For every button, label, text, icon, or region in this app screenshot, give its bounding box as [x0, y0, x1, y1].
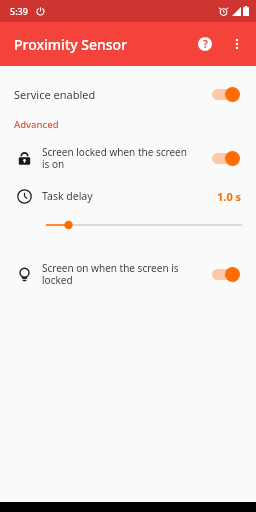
button[interactable]: Toggle	[210, 262, 244, 286]
staticText: 1.0 s	[217, 189, 242, 204]
button[interactable]: Task delay slider	[0, 212, 256, 238]
button[interactable]: More options	[222, 29, 252, 59]
button[interactable]: Help	[190, 29, 220, 59]
button[interactable]: Service enabled	[0, 76, 256, 112]
staticText: Screen on when the screen is locked	[42, 261, 179, 287]
staticText: Advanced	[14, 118, 59, 131]
staticText: ?	[203, 37, 208, 51]
staticText: 5:39	[10, 5, 28, 17]
staticText: Task delay	[42, 189, 93, 203]
button[interactable]: Toggle	[210, 146, 244, 170]
button[interactable]: Toggle	[210, 82, 244, 106]
button[interactable]: Task delay	[0, 180, 256, 212]
button[interactable]: Screen on when the screen is locked	[0, 252, 256, 296]
button[interactable]: Screen locked when the screen is on	[0, 136, 256, 180]
staticText: Screen locked when the screen is on	[42, 145, 187, 171]
staticText: Proximity Sensor Screen…	[14, 35, 174, 54]
staticText: Service enabled	[14, 87, 96, 102]
